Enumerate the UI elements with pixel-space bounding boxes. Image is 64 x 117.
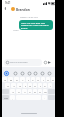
button[interactable]: b: [33, 89, 37, 94]
staticText: Brandon: [16, 7, 30, 11]
staticText: n: [39, 90, 41, 93]
staticText: i: [43, 78, 44, 81]
staticText: 9:41: [5, 1, 11, 5]
staticText: o: [47, 78, 49, 81]
staticText: a: [7, 84, 9, 87]
button[interactable]: m: [43, 89, 47, 94]
button[interactable]: s: [11, 83, 16, 88]
staticText: k: [44, 84, 46, 87]
button[interactable]: Tool: [47, 71, 52, 76]
staticText: Today 10:23 AM: [20, 15, 38, 18]
staticText: t: [28, 78, 29, 81]
button[interactable]: Hey! Are you free this weekend? I was th…: [19, 20, 53, 30]
staticText: x: [18, 90, 20, 93]
button[interactable]: z: [10, 89, 15, 94]
button[interactable]: c: [22, 89, 27, 94]
button[interactable]: Tool: [33, 71, 38, 76]
staticText: Send a message: [10, 61, 28, 64]
staticText: q: [4, 78, 6, 81]
button[interactable]: Google Lens: [3, 70, 9, 76]
button[interactable]: t: [26, 77, 30, 82]
button[interactable]: x: [16, 89, 21, 94]
staticText: r: [22, 78, 24, 81]
button[interactable]: l: [48, 83, 52, 88]
button[interactable]: o: [46, 77, 50, 82]
staticText: z: [12, 90, 14, 93]
button[interactable]: Send a message: [4, 59, 42, 66]
button[interactable]: f: [23, 83, 27, 88]
button[interactable]: i: [41, 77, 45, 82]
button[interactable]: p: [51, 77, 55, 82]
button[interactable]: Tool: [40, 71, 45, 76]
staticText: c: [24, 90, 26, 93]
staticText: s: [13, 84, 15, 87]
button[interactable]: Send: [46, 59, 53, 66]
button[interactable]: Attach: [42, 59, 49, 66]
staticText: p: [52, 78, 54, 81]
button[interactable]: Tool: [13, 71, 18, 76]
staticText: u: [37, 78, 39, 81]
staticText: b: [34, 90, 36, 93]
staticText: .: [44, 96, 45, 99]
button[interactable]: Tool: [20, 71, 25, 76]
button[interactable]: d: [17, 83, 22, 88]
button[interactable]: u: [36, 77, 40, 82]
button[interactable]: a: [5, 83, 10, 88]
button[interactable]: ,: [10, 95, 15, 100]
staticText: j: [40, 84, 41, 87]
button[interactable]: q: [2, 77, 7, 82]
button[interactable]: r: [20, 77, 25, 82]
button[interactable]: n: [38, 89, 42, 94]
button[interactable]: e: [14, 77, 19, 82]
staticText: ?123: [4, 97, 8, 99]
button[interactable]: h: [33, 83, 37, 88]
staticText: Hey! Are you free this weekend? I was th…: [21, 21, 51, 29]
button[interactable]: Back: [2, 5, 9, 12]
button[interactable]: Symbols: [2, 95, 9, 100]
button[interactable]: w: [8, 77, 13, 82]
staticText: e: [16, 78, 18, 81]
staticText: h: [34, 84, 36, 87]
button[interactable]: v: [28, 89, 32, 94]
staticText: g: [29, 84, 31, 87]
button[interactable]: y: [31, 77, 35, 82]
staticText: v: [29, 90, 31, 93]
staticText: 10:23: [13, 29, 19, 32]
button[interactable]: k: [43, 83, 47, 88]
staticText: d: [19, 84, 21, 87]
staticText: f: [25, 84, 26, 87]
button[interactable]: j: [38, 83, 42, 88]
button[interactable]: Tool: [27, 71, 32, 76]
staticText: l: [50, 84, 51, 87]
staticText: y: [32, 78, 34, 81]
staticText: m: [44, 90, 47, 93]
button[interactable]: g: [28, 83, 32, 88]
staticText: w: [10, 78, 12, 81]
